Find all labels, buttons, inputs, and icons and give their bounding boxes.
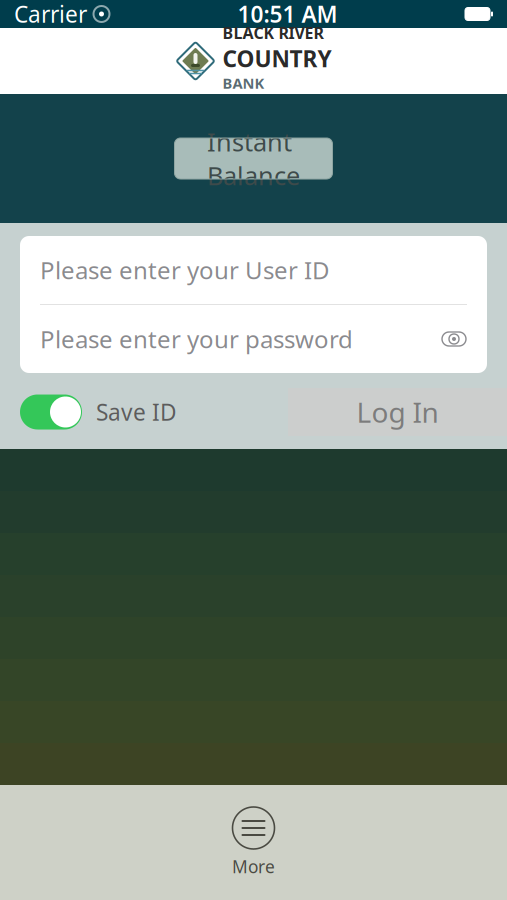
button[interactable]: More (232, 807, 275, 878)
staticText: 10:51 AM (237, 0, 337, 29)
button[interactable]: Log In (288, 388, 507, 436)
staticText: More (232, 855, 275, 878)
staticText: Save ID (96, 397, 177, 427)
staticText: BANK (222, 73, 264, 93)
button[interactable]: Save ID (0, 394, 177, 429)
staticText: COUNTRY (222, 43, 331, 73)
staticText: Log In (356, 393, 438, 431)
button[interactable]: Please enter your User ID (20, 236, 487, 304)
button[interactable]: Please enter your password (20, 305, 487, 373)
staticText: Carrier (14, 0, 87, 29)
staticText: BLACK RIVER (222, 22, 323, 43)
staticText: WE WANT WHAT YOU WANT (222, 93, 292, 100)
staticText: Instant Balance (207, 125, 300, 192)
button[interactable]: Instant Balance (174, 138, 332, 179)
staticText: Please enter your User ID (40, 254, 330, 286)
staticText: Please enter your password (40, 323, 353, 355)
